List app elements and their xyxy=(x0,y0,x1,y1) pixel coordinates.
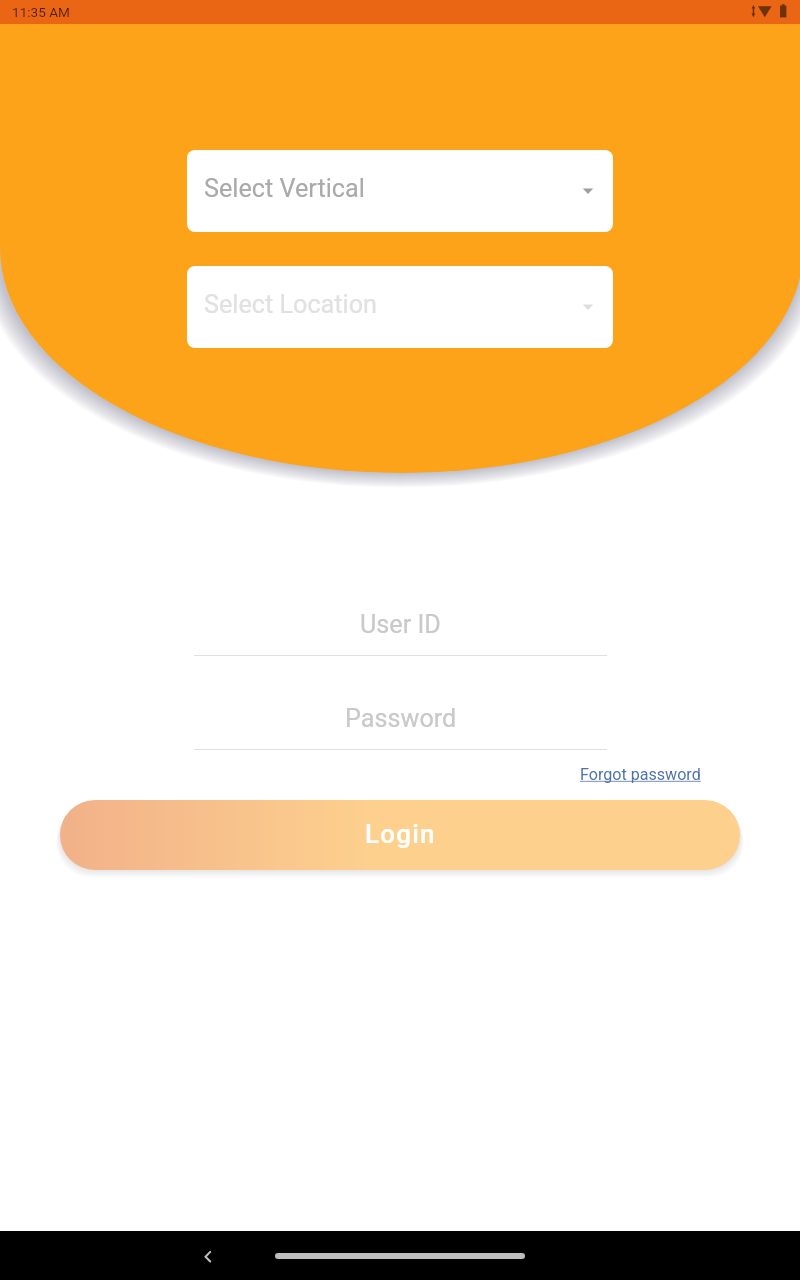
button[interactable]: Forgot password xyxy=(578,763,703,786)
button[interactable]: Select Vertical xyxy=(187,150,613,232)
staticText: 11:35 AM xyxy=(12,4,70,20)
button[interactable]: Select Location xyxy=(187,266,613,348)
button[interactable]: Back xyxy=(183,1231,228,1280)
button[interactable]: Password xyxy=(194,690,607,750)
staticText: Select Location xyxy=(204,290,377,320)
staticText: Login xyxy=(365,819,436,849)
staticText: Forgot password xyxy=(580,765,701,784)
staticText: Select Vertical xyxy=(204,174,365,204)
staticText: Password xyxy=(345,704,457,734)
button[interactable]: User ID xyxy=(194,596,607,656)
staticText: User ID xyxy=(360,610,441,640)
button[interactable]: Login xyxy=(60,800,740,870)
